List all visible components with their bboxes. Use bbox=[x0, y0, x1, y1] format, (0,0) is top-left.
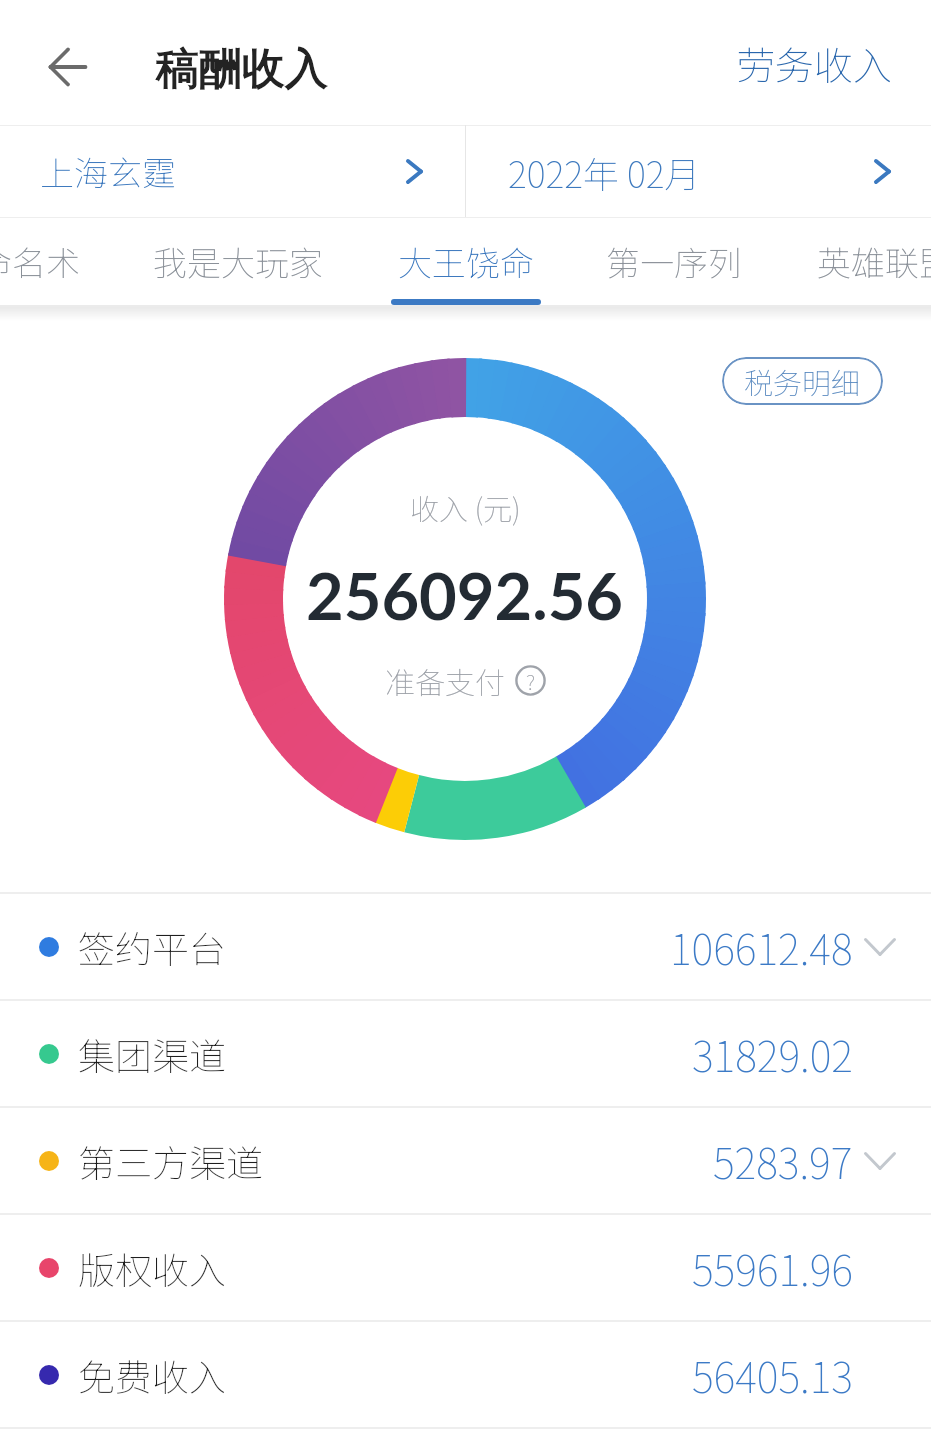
button[interactable]: 签约平台 bbox=[0, 894, 931, 999]
staticText: 106612.48 bbox=[670, 917, 853, 977]
staticText: 税务明细 bbox=[744, 360, 861, 402]
staticText: 5283.97 bbox=[713, 1131, 853, 1191]
staticText: 英雄联盟 bbox=[817, 237, 931, 286]
staticText: 256092.56 bbox=[306, 556, 624, 634]
button[interactable]: 2022年 02月 bbox=[466, 125, 931, 218]
button[interactable]: Help bbox=[515, 665, 546, 696]
staticText: 命名术 bbox=[0, 237, 80, 286]
button[interactable]: 我是大玩家 bbox=[116, 218, 360, 307]
staticText: 第一序列 bbox=[606, 237, 742, 286]
staticText: 2022年 02月 bbox=[508, 146, 701, 198]
staticText: 免费收入 bbox=[78, 1348, 226, 1402]
button[interactable]: 命名术 bbox=[0, 218, 117, 307]
button[interactable]: 劳务收入 bbox=[736, 35, 931, 91]
staticText: 稿酬收入 bbox=[156, 42, 328, 96]
staticText: 收入 (元) bbox=[410, 486, 521, 528]
staticText: 劳务收入 bbox=[736, 35, 893, 91]
staticText: 我是大玩家 bbox=[153, 237, 323, 286]
staticText: 第三方渠道 bbox=[78, 1134, 263, 1188]
button[interactable]: 免费收入 bbox=[0, 1322, 931, 1427]
staticText: 31829.02 bbox=[692, 1024, 853, 1084]
staticText: 集团渠道 bbox=[78, 1027, 226, 1081]
staticText: 55961.96 bbox=[692, 1238, 853, 1298]
button[interactable]: 大王饶命 bbox=[361, 218, 571, 307]
staticText: 56405.13 bbox=[692, 1345, 853, 1405]
button[interactable]: 版权收入 bbox=[0, 1215, 931, 1320]
staticText: 签约平台 bbox=[78, 920, 226, 974]
button[interactable]: 税务明细 bbox=[722, 357, 883, 405]
button[interactable]: 第一序列 bbox=[569, 218, 779, 307]
button[interactable]: 第三方渠道 bbox=[0, 1108, 931, 1213]
button[interactable]: 集团渠道 bbox=[0, 1001, 931, 1106]
staticText: 版权收入 bbox=[78, 1241, 226, 1295]
button[interactable]: Back bbox=[30, 29, 106, 105]
staticText: 上海玄霆 bbox=[40, 147, 176, 196]
staticText: 大王饶命 bbox=[398, 237, 534, 286]
button[interactable]: 上海玄霆 bbox=[0, 125, 465, 218]
staticText: 准备支付 bbox=[385, 659, 505, 702]
button[interactable]: 英雄联盟 bbox=[780, 218, 931, 307]
staticText: ? bbox=[526, 666, 536, 696]
